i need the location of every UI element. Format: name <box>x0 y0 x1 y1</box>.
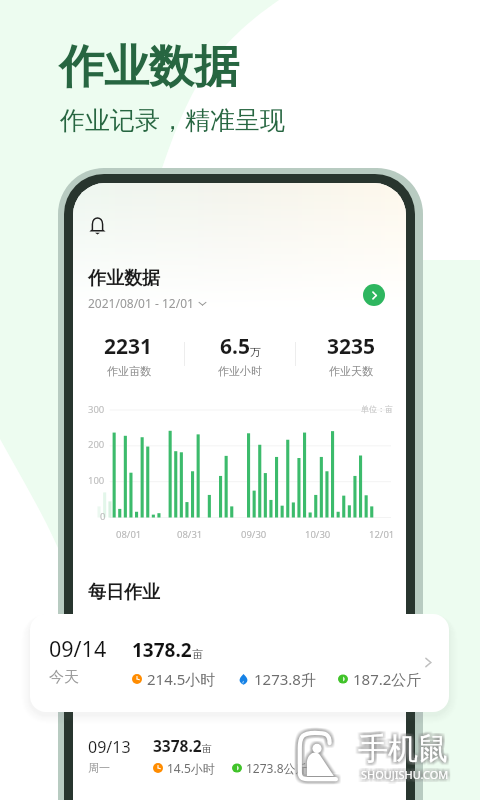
staticText: 12/01 <box>369 528 395 541</box>
staticText: 14.5小时 <box>167 760 215 776</box>
staticText: 手机鼠 <box>355 732 445 770</box>
staticText: SHOUJISHU.COM <box>364 770 452 785</box>
staticText: 手机鼠 <box>360 733 450 771</box>
staticText: 今天 <box>49 668 79 687</box>
staticText: SHOUJISHU.COM <box>361 767 449 782</box>
staticText: 作业数据 <box>59 39 239 96</box>
staticText: 手机鼠 <box>355 728 445 766</box>
staticText: 手机鼠 <box>361 731 451 769</box>
staticText: 手机鼠 <box>358 727 448 765</box>
staticText: 手机鼠 <box>360 729 450 767</box>
staticText: SHOUJISHU.COM <box>361 764 449 779</box>
staticText: 09/14 <box>49 634 107 663</box>
staticText: 手机鼠 <box>358 730 448 768</box>
staticText: 手机鼠 <box>355 727 445 765</box>
staticText: SHOUJISHU.COM <box>358 765 446 780</box>
button[interactable]: Notifications <box>84 213 110 239</box>
staticText: 作业天数 <box>329 364 373 378</box>
staticText: 手机鼠 <box>360 727 450 765</box>
staticText: 手机鼠 <box>361 729 451 767</box>
staticText: 1273.8升 <box>254 669 316 689</box>
staticText: SHOUJISHU.COM <box>359 766 447 781</box>
staticText: SHOUJISHU.COM <box>359 770 447 785</box>
staticText: 手机鼠 <box>358 731 448 769</box>
staticText: SHOUJISHU.COM <box>359 767 447 782</box>
staticText: SHOUJISHU.COM <box>358 770 446 785</box>
staticText: 2231 <box>104 332 153 361</box>
staticText: 手机鼠 <box>356 727 446 765</box>
staticText: SHOUJISHU.COM <box>358 769 446 784</box>
staticText: 2021/08/01 - 12/01 <box>88 295 194 311</box>
staticText: 09/30 <box>241 528 267 541</box>
staticText: 手机鼠 <box>359 729 449 767</box>
staticText: 每日作业 <box>88 581 160 604</box>
staticText: 手机鼠 <box>355 729 445 767</box>
staticText: 手机鼠 <box>359 727 449 765</box>
button[interactable]: 09/14 <box>30 614 449 712</box>
staticText: 亩 <box>202 742 212 755</box>
staticText: SHOUJISHU.COM <box>363 770 451 785</box>
staticText: 手机鼠 <box>357 732 447 770</box>
staticText: 周一 <box>88 761 110 775</box>
staticText: SHOUJISHU.COM <box>360 764 448 779</box>
staticText: 手机鼠 <box>360 730 450 768</box>
staticText: 100 <box>88 474 105 487</box>
staticText: 手机鼠 <box>357 729 447 767</box>
staticText: 作业记录，精准呈现 <box>60 105 285 136</box>
staticText: 手机鼠 <box>359 730 449 768</box>
staticText: 手机鼠 <box>360 731 450 769</box>
staticText: 手机鼠 <box>357 727 447 765</box>
staticText: 手机鼠 <box>355 731 445 769</box>
staticText: 6.5 <box>220 332 250 361</box>
staticText: 187.2公斤 <box>353 669 422 689</box>
staticText: SHOUJISHU.COM <box>358 766 446 781</box>
staticText: 手机鼠 <box>361 730 451 768</box>
staticText: SHOUJISHU.COM <box>362 767 450 782</box>
staticText: SHOUJISHU.COM <box>364 768 452 783</box>
staticText: 手机鼠 <box>358 728 448 766</box>
staticText: 手机鼠 <box>357 733 447 771</box>
staticText: 手机鼠 <box>356 730 446 768</box>
staticText: 3235 <box>327 332 376 361</box>
staticText: 手机鼠 <box>356 729 446 767</box>
staticText: 手机鼠 <box>359 732 449 770</box>
staticText: 08/01 <box>116 528 142 541</box>
staticText: SHOUJISHU.COM <box>364 766 452 781</box>
staticText: 手机鼠 <box>358 729 448 767</box>
staticText: SHOUJISHU.COM <box>364 769 452 784</box>
button[interactable]: View details <box>363 284 385 306</box>
staticText: SHOUJISHU.COM <box>361 765 449 780</box>
staticText: SHOUJISHU.COM <box>362 768 450 783</box>
staticText: 手机鼠 <box>357 730 447 768</box>
staticText: 手机鼠 <box>361 728 451 766</box>
staticText: 手机鼠 <box>355 733 445 771</box>
staticText: 手机鼠 <box>359 733 449 771</box>
staticText: SHOUJISHU.COM <box>359 768 447 783</box>
staticText: 单位：亩 <box>361 404 393 414</box>
staticText: 1378.2 <box>132 637 192 663</box>
staticText: SHOUJISHU.COM <box>361 769 449 784</box>
staticText: 手机鼠 <box>355 730 445 768</box>
staticText: SHOUJISHU.COM <box>359 769 447 784</box>
staticText: 手机鼠 <box>360 732 450 770</box>
staticText: 手机鼠 <box>358 733 448 771</box>
button[interactable]: 09/13 <box>88 735 392 776</box>
staticText: 300 <box>88 403 105 416</box>
staticText: SHOUJISHU.COM <box>363 768 451 783</box>
staticText: 1273.8公斤 <box>246 760 308 776</box>
staticText: 0 <box>100 510 106 523</box>
staticText: SHOUJISHU.COM <box>360 770 448 785</box>
staticText: 214.5小时 <box>147 669 216 689</box>
staticText: 手机鼠 <box>359 731 449 769</box>
staticText: SHOUJISHU.COM <box>360 769 448 784</box>
staticText: 3378.2 <box>153 735 202 756</box>
staticText: 手机鼠 <box>356 728 446 766</box>
staticText: SHOUJISHU.COM <box>359 765 447 780</box>
staticText: SHOUJISHU.COM <box>363 766 451 781</box>
staticText: 手机鼠 <box>360 728 450 766</box>
staticText: SHOUJISHU.COM <box>361 770 449 785</box>
staticText: SHOUJISHU.COM <box>361 766 449 781</box>
staticText: 手机鼠 <box>357 728 447 766</box>
staticText: 200 <box>88 438 105 451</box>
staticText: SHOUJISHU.COM <box>360 768 448 783</box>
